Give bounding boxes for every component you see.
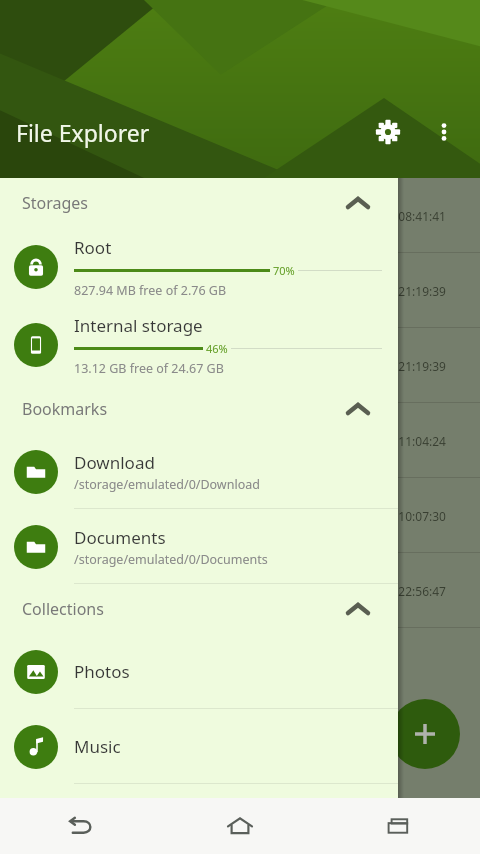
staticText: Download: [74, 451, 155, 474]
staticText: Collections: [22, 598, 104, 620]
staticText: , 22:56:47: [392, 583, 446, 599]
staticText: Photos: [74, 660, 130, 683]
staticText: Documents: [74, 526, 166, 549]
button[interactable]: Home: [160, 798, 320, 854]
button[interactable]: Music: [0, 709, 398, 784]
button[interactable]: Add: [390, 699, 460, 769]
button[interactable]: More options: [424, 112, 464, 152]
staticText: 827.94 MB free of 2.76 GB: [74, 282, 227, 299]
button[interactable]: Root: [0, 228, 398, 306]
button[interactable]: Collections: [0, 584, 398, 634]
staticText: , 21:19:39: [392, 283, 446, 299]
staticText: Music: [74, 735, 121, 758]
staticText: 46%: [206, 341, 228, 356]
staticText: Root: [74, 236, 112, 259]
staticText: , 08:41:41: [392, 208, 446, 224]
staticText: 70%: [273, 263, 295, 278]
staticText: /storage/emulated/0/Download: [74, 476, 260, 493]
staticText: , 21:19:39: [392, 358, 446, 374]
button[interactable]: Settings: [366, 110, 410, 154]
staticText: /storage/emulated/0/Documents: [74, 551, 268, 568]
button[interactable]: Bookmarks: [0, 384, 398, 434]
button[interactable]: Download: [0, 434, 398, 509]
staticText: Bookmarks: [22, 398, 108, 420]
button[interactable]: Photos: [0, 634, 398, 709]
staticText: Storages: [22, 192, 89, 214]
staticText: 13.12 GB free of 24.67 GB: [74, 360, 224, 377]
button[interactable]: Recents: [320, 798, 480, 854]
staticText: , 10:07:30: [392, 508, 446, 524]
staticText: File Explorer: [16, 117, 150, 148]
button[interactable]: Back: [0, 798, 160, 854]
button[interactable]: Documents: [0, 509, 398, 584]
button[interactable]: Storages: [0, 178, 398, 228]
button[interactable]: [0, 784, 398, 854]
staticText: , 11:04:24: [392, 433, 446, 449]
button[interactable]: Internal storage: [0, 306, 398, 384]
staticText: Internal storage: [74, 314, 203, 337]
